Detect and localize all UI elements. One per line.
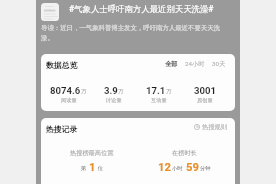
staticText: 原创量 [197,97,213,104]
button[interactable]: 30天 [212,60,226,68]
staticText: 互动量 [151,97,167,104]
staticText: 全部 [165,60,178,68]
staticText: 万 [118,88,124,95]
button[interactable]: 24小时 [185,60,205,68]
staticText: 数据总览 [46,60,78,70]
staticText: 热搜记录 [46,124,78,134]
staticText: 1 [89,161,96,174]
staticText: 3001 [194,85,217,96]
button[interactable]: 话题配图 [41,3,59,21]
staticText: 阅读量 [61,97,77,104]
staticText: 分钟 [200,165,211,172]
staticText: 万 [81,88,87,95]
button[interactable]: 热搜规则 [194,123,228,131]
staticText: #气象人士呼吁南方人最近别天天洗澡# [69,4,214,15]
staticText: 30天 [212,60,226,68]
staticText: 第 [81,165,87,172]
staticText: 在榜时长 [172,149,197,157]
staticText: 3.9 [104,85,118,96]
staticText: 8074.6 [50,85,81,96]
staticText: 12 [158,161,171,174]
staticText: 59 [186,161,199,174]
staticText: 位 [98,165,104,172]
staticText: 导读：近日，一气象科普博主发文，呼吁南方人最近不要天天洗澡。 [41,24,229,42]
staticText: 讨论量 [106,97,122,104]
staticText: 17.1 [146,85,166,96]
button[interactable]: 全部 [165,60,178,68]
staticText: 热搜规则 [202,123,228,131]
staticText: 24小时 [185,60,205,68]
staticText: 小时 [172,165,183,172]
staticText: 万 [166,88,172,95]
staticText: 热搜榜最高位置 [70,149,114,157]
